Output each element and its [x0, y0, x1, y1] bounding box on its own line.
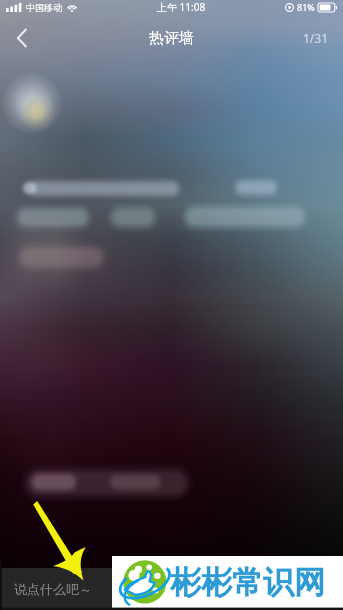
button[interactable]: Back — [0, 20, 44, 56]
staticText: 说点什么吧～ — [14, 581, 92, 597]
staticText: 热评墙 — [149, 29, 194, 48]
staticText: 上午 11:08 — [157, 0, 206, 14]
staticText: 中国移动 — [26, 2, 62, 13]
staticText: 彬彬常识网 — [170, 563, 325, 602]
button[interactable]: 说点什么吧～ — [0, 568, 343, 610]
staticText: 81% — [297, 1, 315, 13]
staticText: 1/31 — [303, 30, 329, 46]
